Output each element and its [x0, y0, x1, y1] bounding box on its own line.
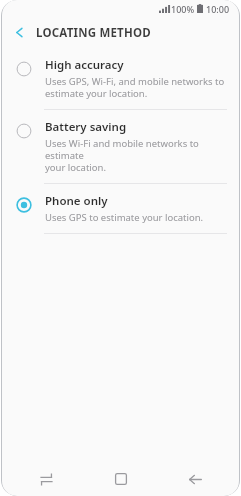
- staticText: 100%: [171, 3, 195, 15]
- button[interactable]: Back: [165, 462, 225, 496]
- button[interactable]: Recents: [16, 462, 76, 496]
- staticText: High accuracy: [45, 57, 124, 73]
- button[interactable]: Back: [2, 17, 36, 48]
- staticText: LOCATING METHOD: [36, 25, 151, 41]
- staticText: 10:00: [206, 3, 230, 15]
- button[interactable]: Phone only: [2, 184, 239, 233]
- button[interactable]: Battery saving: [2, 110, 239, 183]
- button[interactable]: High accuracy: [2, 48, 239, 109]
- button[interactable]: Home: [91, 462, 151, 496]
- staticText: Battery saving: [45, 119, 127, 135]
- staticText: Uses GPS, Wi-Fi, and mobile networks to …: [45, 75, 225, 100]
- staticText: Phone only: [45, 193, 108, 209]
- staticText: Uses GPS to estimate your location.: [45, 211, 204, 224]
- staticText: Uses Wi-Fi and mobile networks to estima…: [45, 137, 225, 174]
